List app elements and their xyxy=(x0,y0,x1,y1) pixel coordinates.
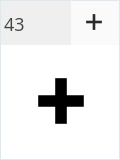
button[interactable]: Add xyxy=(71,1,119,45)
button[interactable]: Add item xyxy=(35,75,87,127)
staticText: 43 xyxy=(4,12,25,37)
button[interactable]: 43 xyxy=(1,1,71,45)
